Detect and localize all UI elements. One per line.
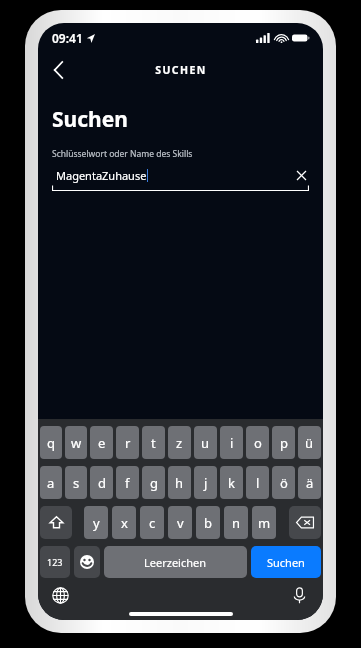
button[interactable]: j: [194, 466, 217, 499]
button[interactable]: c: [140, 506, 164, 539]
staticText: ü: [305, 434, 314, 452]
staticText: l: [256, 474, 260, 492]
button[interactable]: v: [168, 506, 192, 539]
button[interactable]: Zurück: [38, 53, 78, 87]
staticText: t: [151, 434, 156, 452]
staticText: p: [280, 434, 288, 452]
button[interactable]: Umschalt: [40, 506, 72, 539]
staticText: 123: [47, 556, 63, 568]
staticText: c: [149, 514, 156, 532]
staticText: Suchen: [52, 105, 128, 134]
button[interactable]: 123: [40, 546, 70, 578]
button[interactable]: m: [252, 506, 276, 539]
staticText: i: [230, 434, 234, 452]
button[interactable]: g: [142, 466, 165, 499]
staticText: r: [125, 434, 131, 452]
button[interactable]: Suchen: [251, 546, 321, 578]
button[interactable]: ü: [298, 426, 321, 459]
button[interactable]: w: [65, 426, 87, 459]
staticText: ö: [280, 474, 288, 492]
button[interactable]: MagentaZuhause: [52, 166, 309, 184]
staticText: v: [177, 514, 184, 532]
button[interactable]: e: [90, 426, 113, 459]
staticText: u: [201, 434, 210, 452]
button[interactable]: z: [168, 426, 191, 459]
staticText: g: [150, 474, 158, 492]
staticText: o: [254, 434, 262, 452]
button[interactable]: Sprache wechseln: [48, 583, 72, 607]
staticText: y: [93, 514, 100, 532]
button[interactable]: ö: [272, 466, 295, 499]
button[interactable]: Emoji: [74, 546, 100, 578]
staticText: x: [121, 514, 128, 532]
button[interactable]: Löschen: [293, 167, 309, 183]
staticText: h: [175, 474, 184, 492]
button[interactable]: i: [220, 426, 243, 459]
staticText: q: [47, 434, 55, 452]
button[interactable]: t: [142, 426, 165, 459]
staticText: Schlüsselwort oder Name des Skills: [52, 148, 193, 160]
button[interactable]: Diktat: [287, 583, 311, 607]
staticText: d: [98, 474, 106, 492]
staticText: z: [176, 434, 183, 452]
staticText: e: [98, 434, 106, 452]
staticText: Suchen: [267, 555, 305, 570]
staticText: s: [73, 474, 80, 492]
staticText: SUCHEN: [155, 63, 207, 77]
staticText: ä: [306, 474, 314, 492]
button[interactable]: l: [246, 466, 269, 499]
staticText: w: [71, 434, 82, 452]
button[interactable]: Leerzeichen: [104, 546, 247, 578]
button[interactable]: k: [220, 466, 243, 499]
staticText: m: [258, 514, 271, 532]
button[interactable]: Löschen: [289, 506, 321, 539]
button[interactable]: b: [196, 506, 220, 539]
staticText: k: [228, 474, 235, 492]
button[interactable]: o: [246, 426, 269, 459]
button[interactable]: f: [116, 466, 139, 499]
button[interactable]: n: [224, 506, 248, 539]
staticText: f: [125, 474, 130, 492]
button[interactable]: ä: [298, 466, 321, 499]
staticText: MagentaZuhause: [56, 168, 147, 183]
staticText: j: [204, 474, 208, 492]
button[interactable]: h: [168, 466, 191, 499]
staticText: n: [232, 514, 241, 532]
button[interactable]: q: [40, 426, 62, 459]
button[interactable]: u: [194, 426, 217, 459]
button[interactable]: s: [65, 466, 87, 499]
button[interactable]: d: [90, 466, 113, 499]
staticText: a: [47, 474, 55, 492]
staticText: b: [204, 514, 212, 532]
button[interactable]: x: [112, 506, 136, 539]
button[interactable]: y: [84, 506, 108, 539]
button[interactable]: r: [116, 426, 139, 459]
button[interactable]: p: [272, 426, 295, 459]
button[interactable]: a: [40, 466, 62, 499]
staticText: 09:41: [52, 30, 83, 46]
staticText: Leerzeichen: [144, 555, 207, 570]
